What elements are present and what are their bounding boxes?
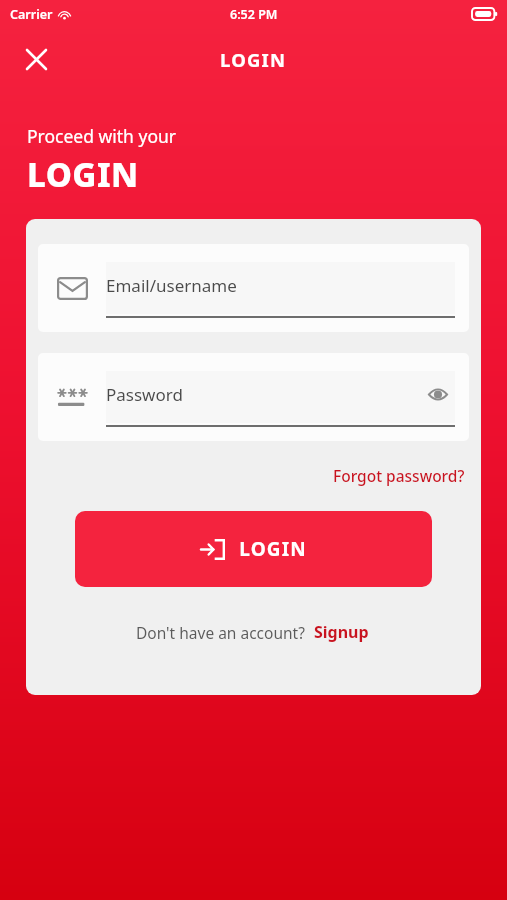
staticText: Email/username bbox=[106, 274, 237, 297]
staticText: 6:52 PM bbox=[230, 6, 278, 23]
button[interactable]: Email/username bbox=[38, 244, 469, 332]
staticText: Carrier bbox=[10, 6, 53, 23]
staticText: LOGIN bbox=[220, 47, 287, 72]
staticText: Signup bbox=[314, 621, 369, 643]
button[interactable]: Show password bbox=[421, 377, 455, 411]
staticText: Forgot password? bbox=[333, 465, 465, 486]
staticText: Password bbox=[106, 383, 183, 406]
staticText: LOGIN bbox=[27, 152, 139, 197]
staticText: LOGIN bbox=[239, 536, 307, 562]
button[interactable]: Forgot password? bbox=[329, 462, 469, 489]
button[interactable]: Password bbox=[38, 353, 469, 441]
staticText: Don't have an account? bbox=[136, 622, 305, 643]
staticText: Proceed with your bbox=[27, 124, 177, 148]
button[interactable]: Close bbox=[14, 37, 58, 81]
button[interactable]: Signup bbox=[312, 618, 371, 646]
button[interactable]: LOGIN bbox=[75, 511, 432, 587]
